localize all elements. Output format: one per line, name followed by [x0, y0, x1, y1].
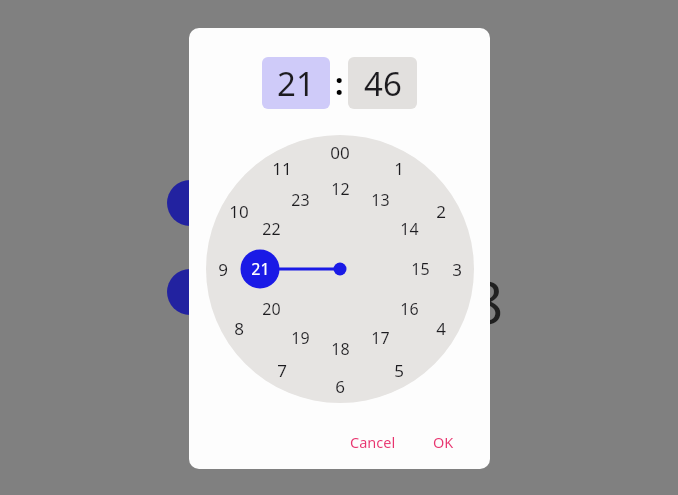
- staticText: :: [335, 63, 344, 104]
- staticText: Cancel: [350, 432, 396, 452]
- button[interactable]: 21: [262, 57, 330, 109]
- staticText: 9: [218, 258, 228, 281]
- staticText: 8: [234, 317, 244, 340]
- staticText: OK: [433, 432, 454, 452]
- staticText: 21: [251, 258, 270, 280]
- staticText: 3: [452, 258, 462, 281]
- staticText: 17: [371, 327, 390, 349]
- staticText: 00: [330, 141, 350, 164]
- staticText: 13: [371, 189, 390, 211]
- staticText: 21: [277, 61, 315, 106]
- staticText: 19: [291, 327, 310, 349]
- staticText: 4: [436, 317, 446, 340]
- staticText: 5: [394, 359, 404, 382]
- button[interactable]: Cancel: [341, 426, 405, 458]
- staticText: 11: [272, 157, 292, 180]
- staticText: 46: [364, 61, 402, 106]
- staticText: 20: [262, 298, 281, 320]
- staticText: 6: [335, 375, 345, 398]
- staticText: 18: [331, 338, 350, 360]
- staticText: 1: [394, 157, 404, 180]
- staticText: 12: [331, 178, 350, 200]
- staticText: 22: [262, 218, 281, 240]
- staticText: 7: [277, 359, 287, 382]
- button[interactable]: 46: [348, 57, 417, 109]
- staticText: 2: [436, 200, 446, 223]
- button[interactable]: 00: [206, 135, 474, 403]
- staticText: 10: [229, 200, 249, 223]
- staticText: 16: [400, 298, 419, 320]
- button[interactable]: OK: [423, 426, 463, 458]
- staticText: 14: [400, 218, 419, 240]
- staticText: 8: [470, 262, 504, 332]
- staticText: 23: [291, 189, 310, 211]
- staticText: 15: [411, 258, 430, 280]
